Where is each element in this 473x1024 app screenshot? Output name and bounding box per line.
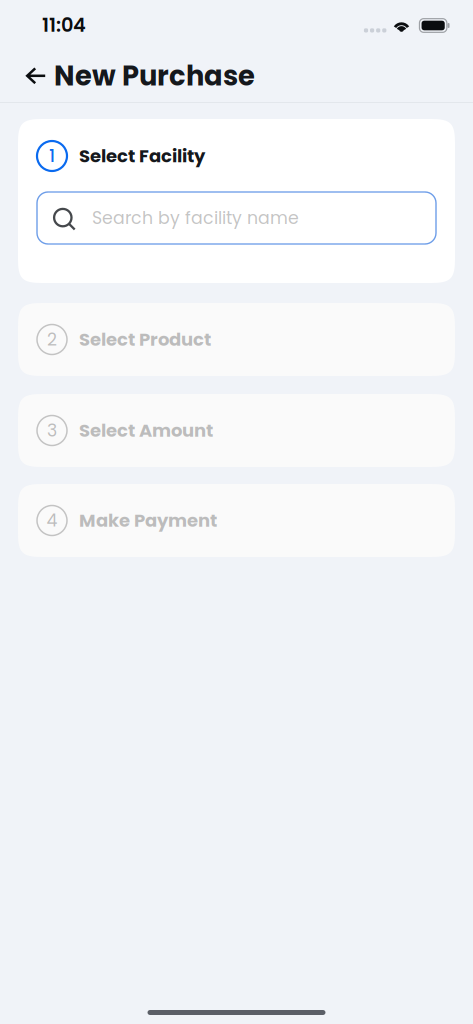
- staticText: 3: [47, 418, 57, 443]
- staticText: Search by facility name: [92, 206, 299, 230]
- staticText: 4: [46, 508, 57, 533]
- staticText: 2: [47, 327, 57, 352]
- button[interactable]: 3: [18, 394, 455, 467]
- staticText: Select Amount: [79, 418, 213, 443]
- button[interactable]: 4: [18, 484, 455, 557]
- button[interactable]: 2: [18, 303, 455, 376]
- staticText: Select Facility: [79, 143, 205, 169]
- staticText: New Purchase: [54, 57, 255, 95]
- staticText: Select Product: [79, 327, 211, 352]
- staticText: Make Payment: [79, 508, 217, 533]
- button[interactable]: Back: [0, 58, 54, 93]
- button[interactable]: Search by facility name: [37, 192, 436, 244]
- staticText: 11:04: [42, 11, 86, 39]
- staticText: 1: [49, 144, 55, 168]
